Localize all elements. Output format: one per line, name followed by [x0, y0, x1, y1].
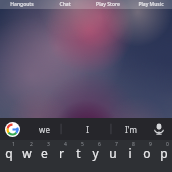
staticText: Play Music — [138, 1, 164, 8]
staticText: 5 — [81, 141, 84, 148]
staticText: q — [5, 145, 13, 161]
staticText: 2 — [30, 141, 33, 148]
staticText: we — [39, 124, 50, 135]
button[interactable]: Hangouts — [0, 1, 43, 8]
staticText: 7 — [115, 141, 118, 148]
button[interactable]: Play Music — [129, 1, 172, 8]
staticText: 0 — [166, 141, 169, 148]
staticText: 9 — [149, 141, 152, 148]
staticText: i — [128, 145, 132, 161]
button[interactable]: 0 — [155, 140, 172, 172]
button[interactable]: 2 — [18, 140, 36, 172]
button[interactable]: 4 — [53, 140, 70, 172]
staticText: I'm — [125, 124, 137, 135]
button[interactable]: I — [66, 124, 109, 135]
button[interactable]: we — [22, 124, 66, 135]
staticText: Play Store — [96, 1, 120, 8]
staticText: r — [59, 145, 64, 161]
staticText: t — [76, 145, 81, 161]
staticText: w — [22, 145, 32, 161]
staticText: 8 — [132, 141, 135, 148]
staticText: p — [160, 145, 168, 161]
staticText: 1 — [12, 141, 15, 148]
button[interactable]: 9 — [138, 140, 155, 172]
staticText: Chat — [59, 1, 71, 8]
button[interactable]: 1 — [0, 140, 18, 172]
staticText: o — [143, 145, 151, 161]
button[interactable]: 5 — [70, 140, 87, 172]
button[interactable]: 8 — [121, 140, 138, 172]
button[interactable]: 7 — [104, 140, 121, 172]
button[interactable]: 6 — [87, 140, 104, 172]
staticText: I — [86, 124, 89, 135]
button[interactable]: Voice input — [151, 121, 167, 137]
button[interactable]: I'm — [109, 124, 152, 135]
button[interactable]: Play Store — [86, 1, 129, 8]
staticText: y — [92, 145, 99, 161]
staticText: u — [109, 145, 117, 161]
staticText: Hangouts — [10, 1, 34, 8]
button[interactable]: Chat — [43, 1, 86, 8]
button[interactable]: Google search — [5, 122, 20, 137]
staticText: 6 — [98, 141, 101, 148]
button[interactable]: 3 — [36, 140, 53, 172]
staticText: e — [41, 145, 48, 161]
staticText: 4 — [64, 141, 67, 148]
staticText: 3 — [47, 141, 50, 148]
